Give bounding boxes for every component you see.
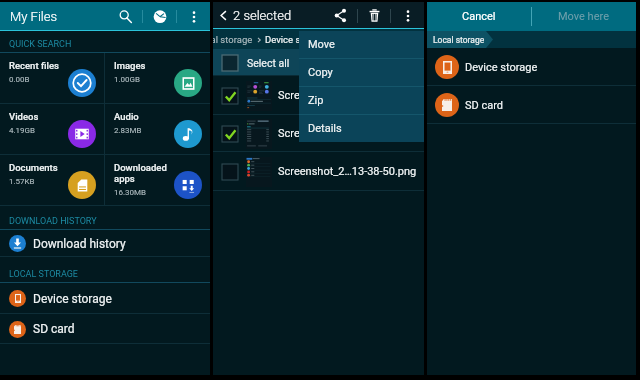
staticText: 1.57KB bbox=[9, 177, 35, 186]
button[interactable]: Images bbox=[105, 53, 210, 103]
button[interactable]: More options bbox=[177, 2, 210, 31]
staticText: SD card bbox=[465, 99, 504, 112]
staticText: 2 selected bbox=[233, 8, 292, 23]
button[interactable]: SD card bbox=[427, 86, 636, 124]
staticText: Move bbox=[308, 38, 335, 51]
button[interactable]: More options bbox=[391, 2, 424, 29]
button[interactable]: Search bbox=[108, 2, 142, 31]
staticText: Recent files bbox=[9, 60, 59, 71]
button[interactable]: Screenshot_2…13-38-50.png bbox=[213, 152, 424, 191]
staticText: Device storage bbox=[465, 61, 538, 74]
button[interactable]: Share bbox=[323, 2, 357, 29]
staticText: Screenshot_2…13-38-50.png bbox=[278, 89, 417, 102]
button[interactable]: Zip bbox=[299, 87, 424, 114]
staticText: Videos bbox=[9, 111, 39, 122]
staticText: Cancel bbox=[462, 10, 496, 23]
button[interactable]: Storage usage bbox=[143, 2, 176, 31]
staticText: 2.83MB bbox=[114, 126, 142, 135]
staticText: Images bbox=[114, 60, 146, 71]
staticText: LOCAL STORAGE bbox=[9, 269, 78, 280]
button[interactable]: Download history bbox=[0, 230, 210, 257]
button[interactable]: Select all bbox=[213, 49, 424, 76]
button[interactable]: Delete bbox=[358, 2, 390, 29]
button[interactable]: Move bbox=[299, 31, 424, 58]
staticText: 16.30MB bbox=[114, 188, 147, 197]
button[interactable]: Recent files bbox=[0, 53, 104, 103]
staticText: Downloaded apps bbox=[114, 162, 173, 184]
button[interactable]: Audio bbox=[105, 104, 210, 154]
staticText: Screenshot_2…13-38-50.png bbox=[278, 165, 417, 178]
staticText: Move here bbox=[558, 10, 609, 23]
staticText: Local storage bbox=[433, 35, 485, 45]
button[interactable]: SD card bbox=[0, 314, 210, 344]
staticText: Download history bbox=[33, 237, 126, 251]
button[interactable]: Details bbox=[299, 115, 424, 142]
staticText: Zip bbox=[308, 94, 324, 107]
staticText: Documents bbox=[9, 162, 58, 173]
staticText: Select all bbox=[247, 57, 290, 69]
staticText: QUICK SEARCH bbox=[9, 39, 72, 50]
staticText: 4.19GB bbox=[9, 126, 36, 135]
button[interactable]: Documents bbox=[0, 155, 104, 205]
button[interactable]: Device storage bbox=[427, 48, 636, 86]
button[interactable]: Cancel bbox=[427, 2, 531, 31]
staticText: Device storage bbox=[33, 292, 112, 306]
button[interactable]: Move here bbox=[531, 2, 636, 31]
staticText: 1.00GB bbox=[114, 75, 141, 84]
button[interactable]: Device storage bbox=[0, 283, 210, 314]
staticText: My Files bbox=[10, 9, 58, 24]
button[interactable]: Downloaded apps bbox=[105, 155, 210, 205]
staticText: Screenshot_2…13-38-50.png bbox=[278, 127, 417, 140]
staticText: Audio bbox=[114, 111, 139, 122]
staticText: 0.00B bbox=[9, 75, 30, 84]
button[interactable]: Videos bbox=[0, 104, 104, 154]
staticText: Device storage bbox=[265, 34, 328, 45]
staticText: SD card bbox=[33, 322, 75, 336]
staticText: Details bbox=[308, 122, 342, 135]
button[interactable]: Screenshot_2…13-38-50.png bbox=[213, 76, 424, 115]
button[interactable]: Back bbox=[213, 2, 233, 29]
staticText: Local storage bbox=[213, 34, 253, 45]
button[interactable]: Copy bbox=[299, 59, 424, 86]
staticText: DOWNLOAD HISTORY bbox=[9, 216, 97, 227]
staticText: Copy bbox=[308, 66, 333, 79]
button[interactable]: Screenshot_2…13-38-50.png bbox=[213, 115, 424, 152]
